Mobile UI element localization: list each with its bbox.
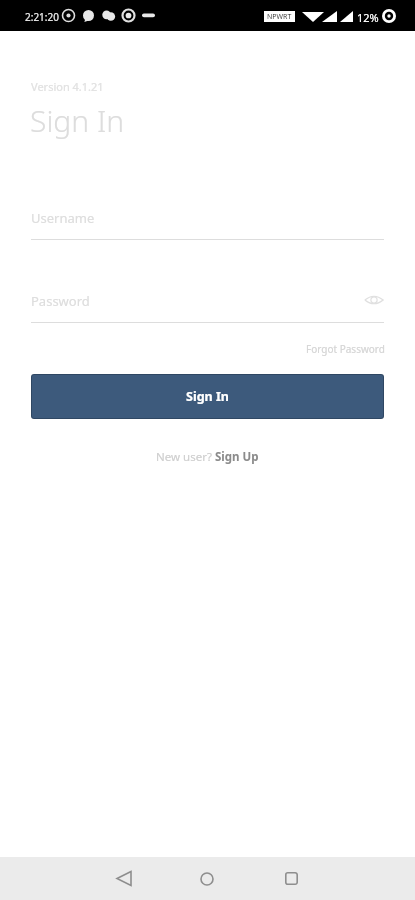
staticText: New user? (156, 449, 215, 465)
staticText: Sign In (186, 388, 229, 405)
button[interactable]: Recents (267, 857, 315, 900)
button[interactable]: Show password (362, 288, 386, 312)
staticText: NPWRT (267, 12, 292, 22)
button[interactable]: Sign Up (215, 449, 259, 465)
staticText: Username (31, 209, 95, 227)
staticText: 12% (357, 10, 379, 25)
button[interactable]: Home (183, 857, 231, 900)
staticText: Version 4.1.21 (31, 79, 104, 94)
button[interactable]: Forgot Password (300, 337, 391, 361)
button[interactable]: Sign In (32, 375, 383, 418)
staticText: Password (31, 292, 90, 310)
button[interactable]: Password (31, 283, 384, 323)
button[interactable]: Username (31, 200, 384, 240)
button[interactable]: Back (99, 857, 147, 900)
staticText: 2:21:20 (25, 10, 59, 24)
staticText: Forgot Password (306, 342, 385, 356)
staticText: Sign In (30, 100, 125, 141)
